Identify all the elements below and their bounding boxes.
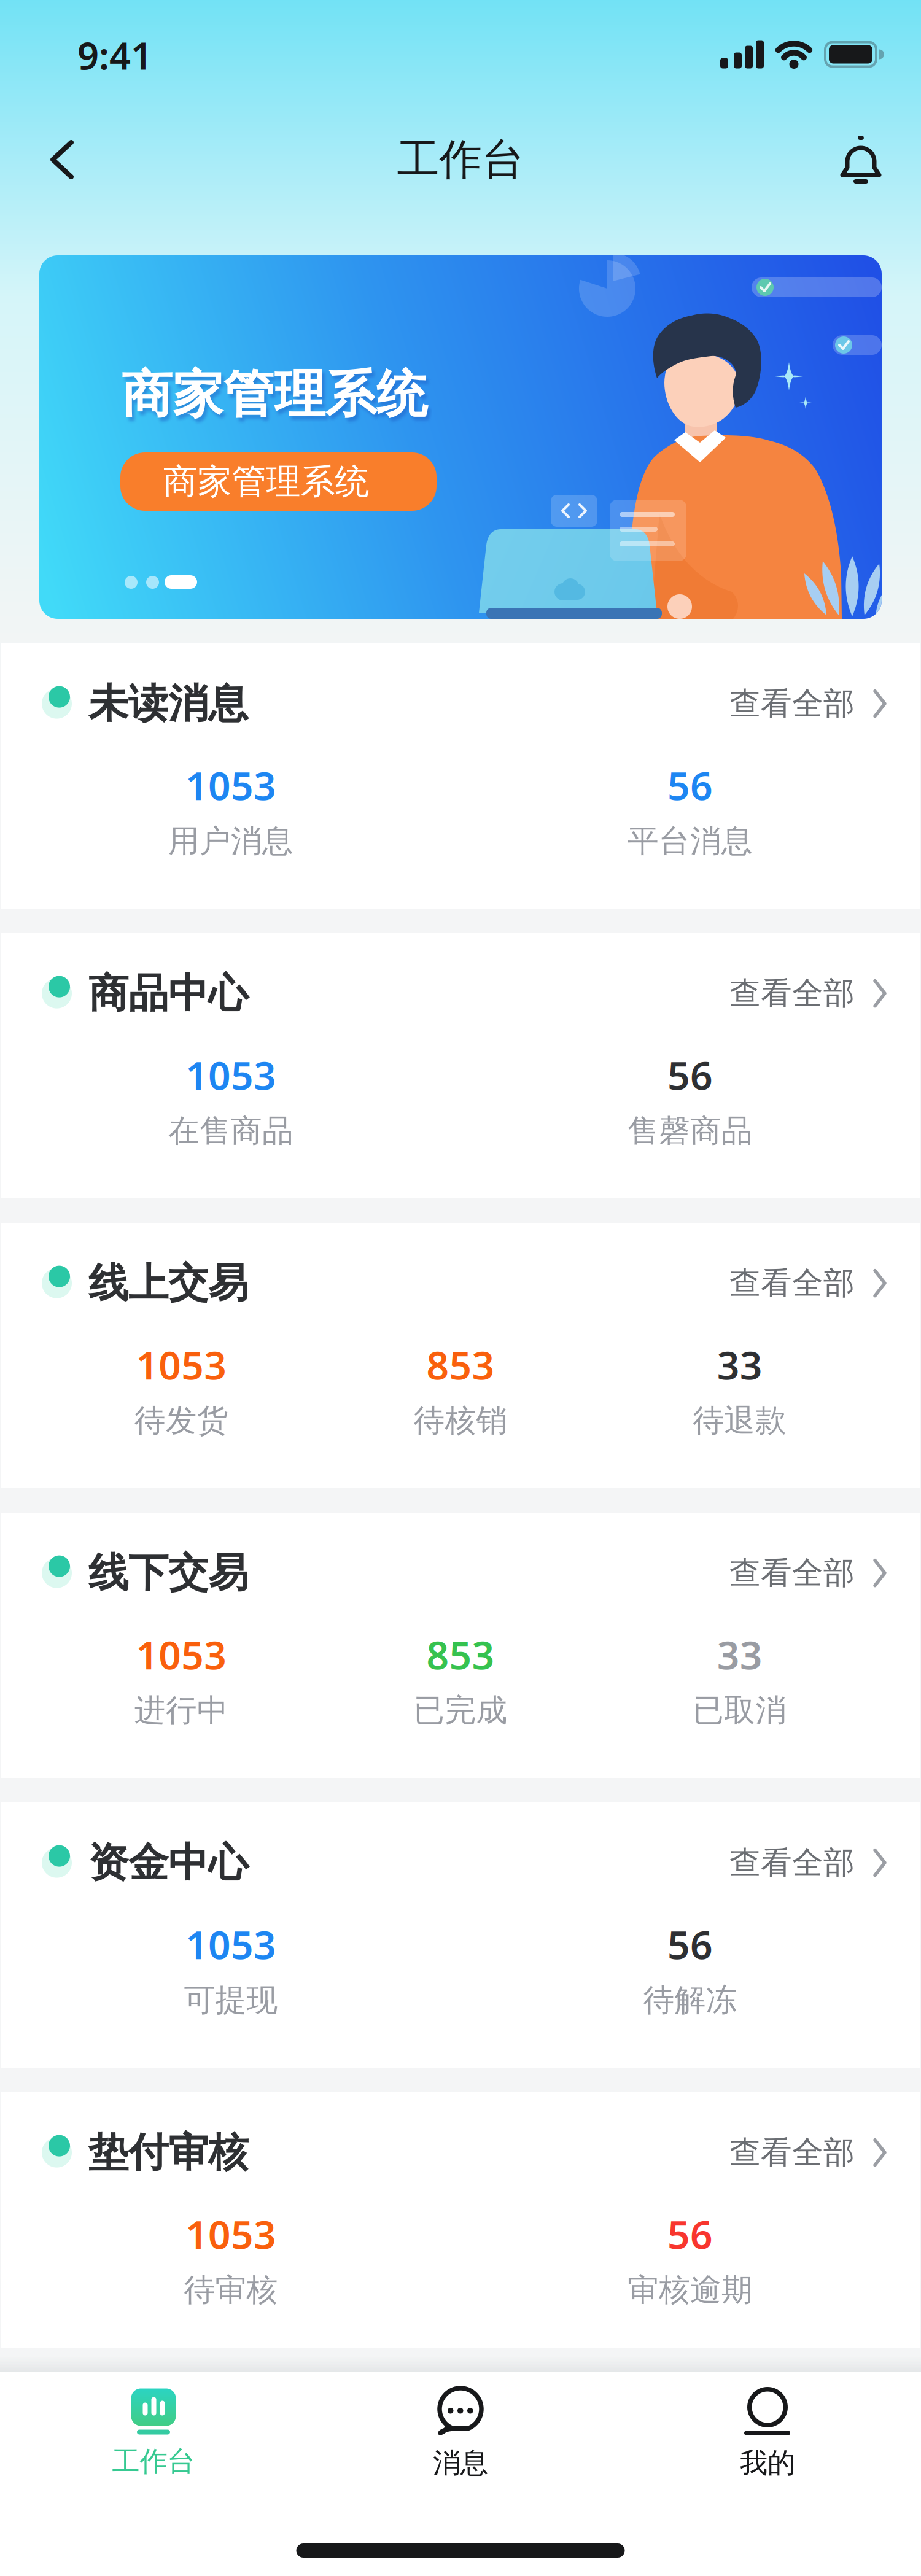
button[interactable]: 商家管理系统 xyxy=(120,452,437,511)
staticText: 我的 xyxy=(740,2446,795,2480)
staticText: 商品中心 xyxy=(88,969,248,1018)
staticText: 33 xyxy=(717,1628,762,1680)
staticText: 查看全部 xyxy=(729,2133,855,2172)
staticText: 工作台 xyxy=(397,133,524,186)
staticText: 查看全部 xyxy=(729,1264,855,1302)
button[interactable]: Back xyxy=(0,140,75,179)
staticText: 待审核 xyxy=(184,2271,278,2309)
staticText: 进行中 xyxy=(134,1691,228,1730)
button[interactable]: Notifications xyxy=(839,136,921,184)
staticText: 9:41 xyxy=(77,30,152,80)
staticText: 用户消息 xyxy=(168,822,293,860)
staticText: 56 xyxy=(667,2208,713,2260)
staticText: 1053 xyxy=(136,1628,227,1680)
staticText: 1053 xyxy=(185,1049,276,1101)
staticText: 待解冻 xyxy=(643,1981,737,2019)
button[interactable]: 我的 xyxy=(614,2387,921,2480)
staticText: 1053 xyxy=(185,1918,276,1970)
button[interactable]: 查看全部 xyxy=(729,1264,887,1302)
button[interactable]: 查看全部 xyxy=(729,974,887,1012)
staticText: 查看全部 xyxy=(729,685,855,723)
staticText: 查看全部 xyxy=(729,1844,855,1882)
staticText: 1053 xyxy=(136,1338,227,1391)
staticText: 56 xyxy=(667,1049,713,1101)
staticText: 垫付审核 xyxy=(88,2128,248,2177)
button[interactable]: 工作台 xyxy=(0,2388,307,2479)
staticText: 商家管理系统 xyxy=(122,363,427,426)
staticText: 在售商品 xyxy=(168,1112,293,1150)
staticText: 可提现 xyxy=(184,1981,278,2019)
button[interactable]: 查看全部 xyxy=(729,1844,887,1882)
staticText: 工作台 xyxy=(112,2444,195,2479)
staticText: 待退款 xyxy=(693,1402,787,1440)
button[interactable]: 查看全部 xyxy=(729,1554,887,1592)
staticText: 平台消息 xyxy=(628,822,753,860)
staticText: 待核销 xyxy=(414,1402,507,1440)
staticText: 消息 xyxy=(433,2446,488,2480)
button[interactable]: 消息 xyxy=(307,2387,614,2480)
staticText: 已完成 xyxy=(414,1691,507,1730)
staticText: 线上交易 xyxy=(88,1259,248,1308)
staticText: 查看全部 xyxy=(729,1554,855,1592)
staticText: 1053 xyxy=(185,2208,276,2260)
staticText: 853 xyxy=(426,1338,495,1391)
staticText: 已取消 xyxy=(693,1691,787,1730)
staticText: 未读消息 xyxy=(88,679,248,728)
staticText: 1053 xyxy=(185,759,276,811)
staticText: 线下交易 xyxy=(88,1548,248,1598)
staticText: 商家管理系统 xyxy=(163,460,369,503)
button[interactable]: 商家管理系统 xyxy=(39,255,882,619)
button[interactable]: 查看全部 xyxy=(729,2133,887,2172)
staticText: 56 xyxy=(667,1918,713,1970)
staticText: 待发货 xyxy=(134,1402,228,1440)
staticText: 查看全部 xyxy=(729,974,855,1012)
button[interactable]: 查看全部 xyxy=(729,685,887,723)
staticText: 56 xyxy=(667,759,713,811)
staticText: 33 xyxy=(717,1338,762,1391)
staticText: 售磬商品 xyxy=(628,1112,753,1150)
staticText: 资金中心 xyxy=(88,1838,248,1887)
staticText: 审核逾期 xyxy=(628,2271,753,2309)
staticText: 853 xyxy=(426,1628,495,1680)
